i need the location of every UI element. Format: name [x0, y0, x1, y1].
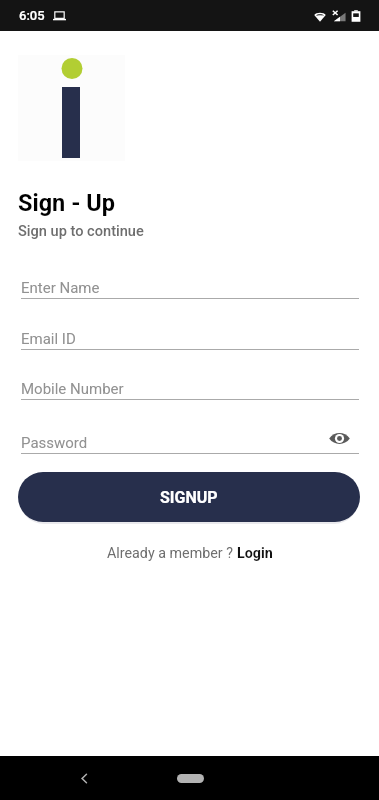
staticText: Enter Name [21, 279, 100, 297]
staticText: Password [21, 434, 88, 452]
button[interactable]: Home [177, 774, 204, 783]
button[interactable]: Show password [325, 424, 353, 452]
staticText: SIGNUP [160, 488, 218, 507]
button[interactable]: SIGNUP [18, 472, 360, 522]
staticText: Login [237, 545, 273, 562]
staticText: Email ID [21, 330, 76, 348]
button[interactable]: Back [73, 767, 95, 789]
staticText: 6:05 [19, 8, 45, 23]
button[interactable]: Login [237, 545, 273, 562]
staticText: Already a member ? [107, 545, 237, 562]
staticText: Sign up to continue [18, 222, 144, 239]
staticText: Mobile Number [21, 380, 124, 398]
staticText: Sign - Up [18, 189, 115, 217]
